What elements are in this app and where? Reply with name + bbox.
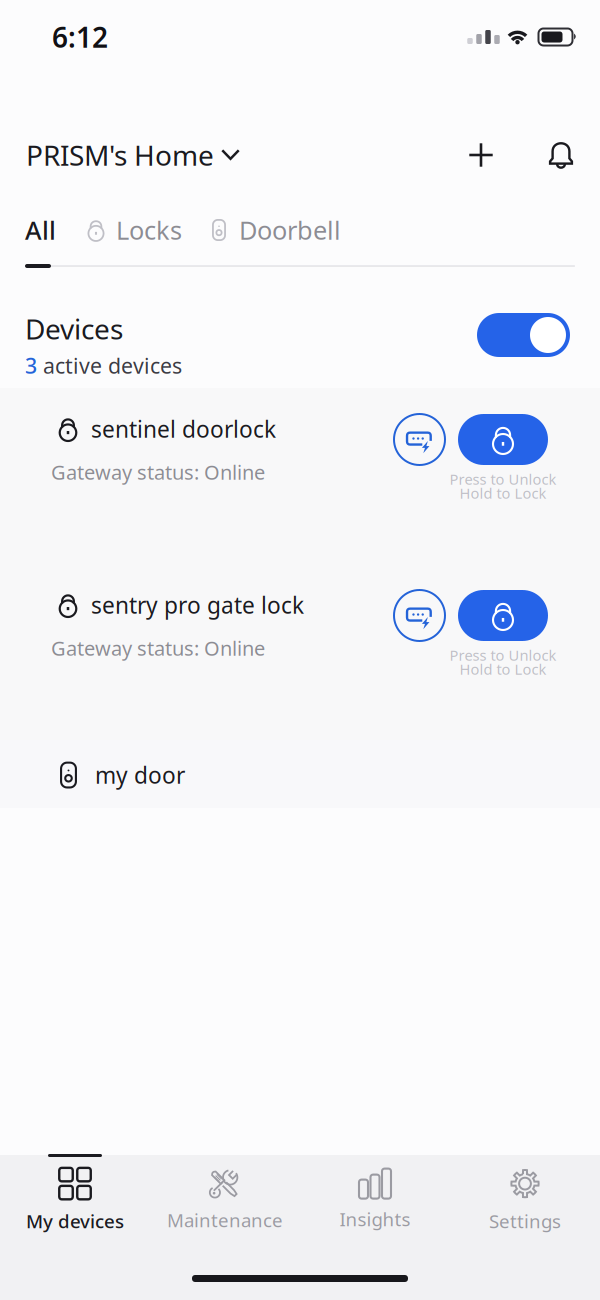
button[interactable]: My devices [0, 1157, 150, 1243]
button[interactable]: Unlock sentinel doorlock [458, 414, 548, 465]
staticText: 6:12 [52, 18, 108, 56]
staticText: Hold to Lock [459, 659, 546, 679]
button[interactable]: All [25, 210, 56, 250]
staticText: sentinel doorlock [91, 414, 276, 444]
staticText: All [25, 213, 56, 247]
button[interactable]: PRISM's Home [26, 132, 240, 178]
button[interactable]: Add device [454, 128, 508, 182]
staticText: Doorbell [239, 213, 341, 247]
button[interactable]: Locks [85, 210, 182, 250]
staticText: Insights [339, 1207, 410, 1231]
staticText: sentry pro gate lock [91, 590, 304, 620]
staticText: Maintenance [167, 1208, 283, 1232]
button[interactable]: Doorbell [208, 210, 341, 250]
staticText: Press to Unlock [449, 645, 556, 665]
button[interactable]: Battery status for sentinel doorlock [394, 414, 445, 465]
staticText: my door [95, 760, 185, 790]
staticText: active devices [43, 351, 182, 379]
button[interactable]: Notifications [534, 128, 588, 182]
staticText: 3 [25, 351, 37, 379]
staticText: Devices [25, 310, 123, 347]
staticText: Locks [116, 213, 182, 247]
staticText: My devices [26, 1209, 124, 1233]
staticText: Settings [489, 1209, 561, 1233]
staticText: Press to Unlock [449, 469, 556, 489]
staticText: PRISM's Home [26, 136, 214, 174]
button[interactable]: Settings [450, 1157, 600, 1243]
button[interactable]: Maintenance [150, 1157, 300, 1243]
staticText: Gateway status: Online [51, 459, 265, 485]
staticText: Hold to Lock [459, 483, 546, 503]
button[interactable]: Insights [300, 1157, 450, 1243]
staticText: Gateway status: Online [51, 635, 265, 661]
button[interactable]: Battery status for sentry pro gate lock [394, 590, 445, 641]
button[interactable]: Unlock sentry pro gate lock [458, 590, 548, 641]
button[interactable]: Toggle all devices [477, 313, 570, 357]
